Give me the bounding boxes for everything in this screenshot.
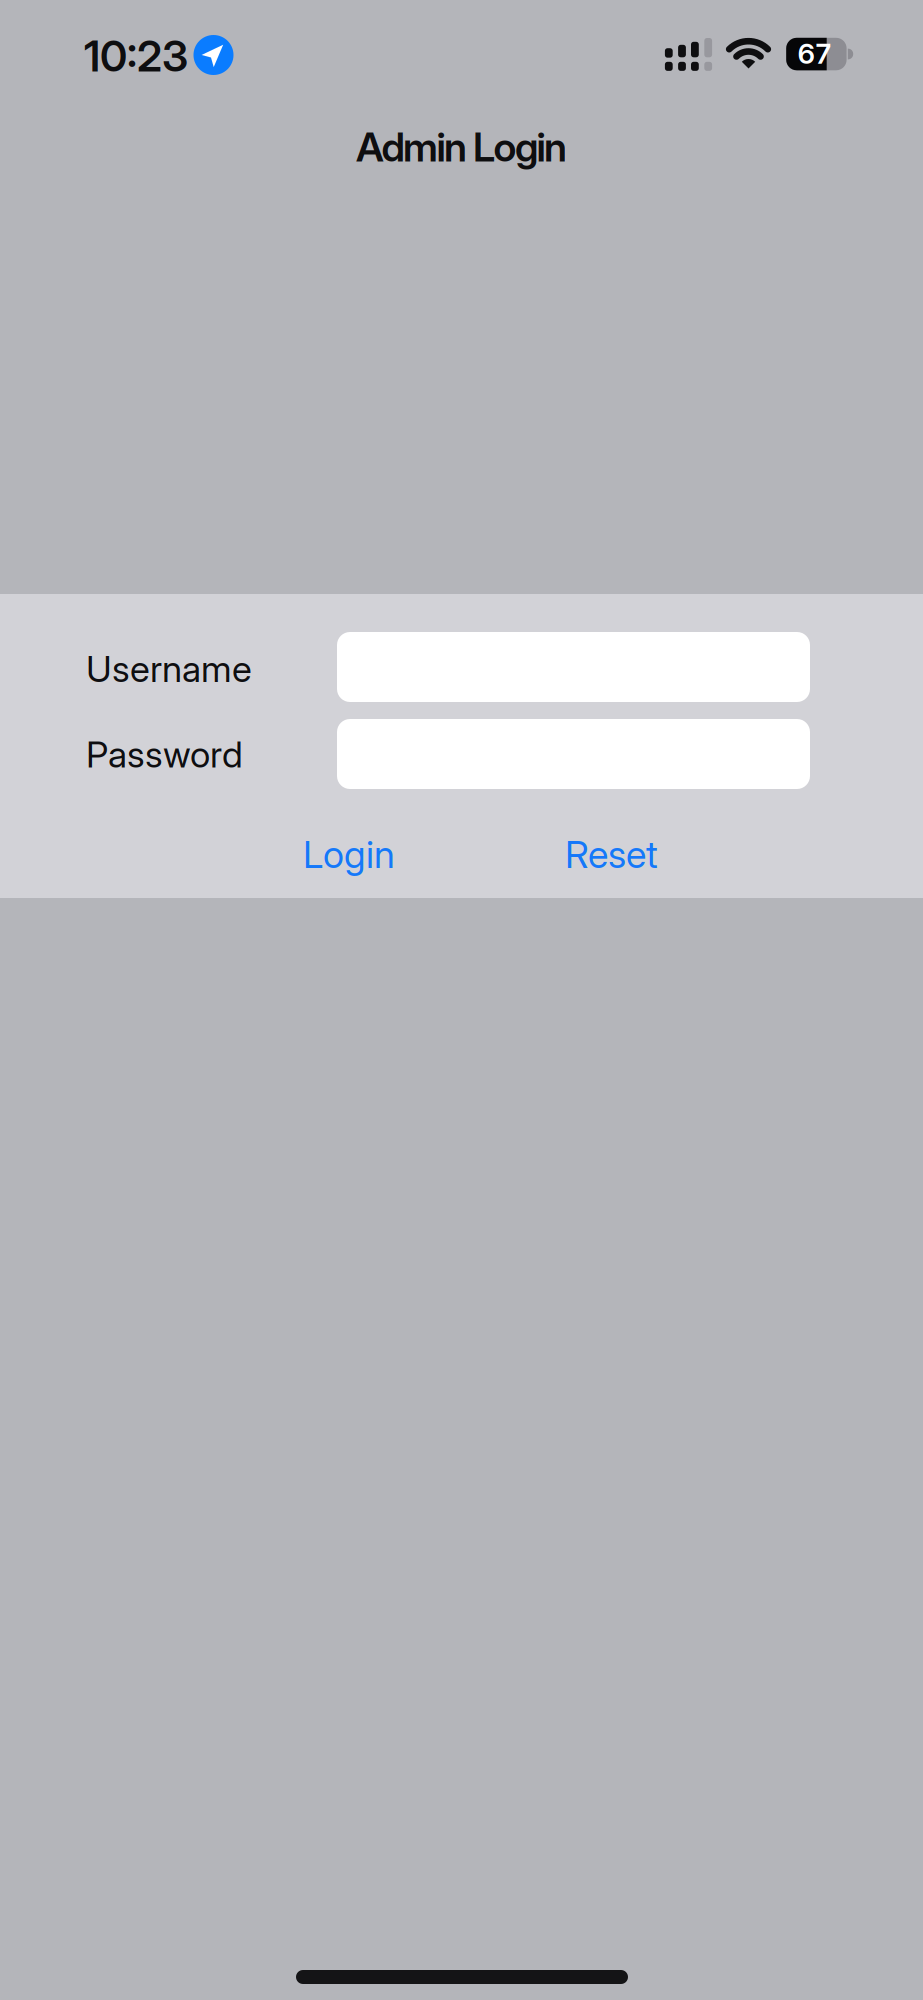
staticText: Reset [565,832,658,876]
staticText: Password [86,733,243,776]
button[interactable]: Reset [565,832,658,876]
staticText: 10:23 [84,30,188,82]
staticText: 67 [797,37,831,70]
button[interactable]: Login [303,832,395,876]
staticText: Login [303,832,395,876]
staticText: Admin Login [356,123,567,171]
staticText: Username [86,648,252,690]
